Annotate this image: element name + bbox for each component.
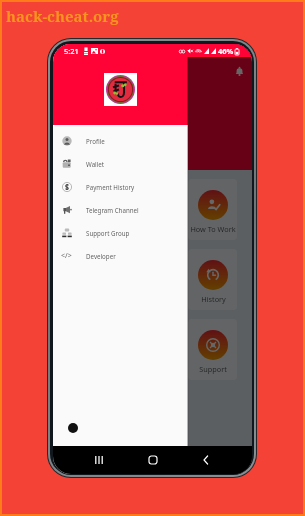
staticText: 46%: [218, 46, 234, 56]
button[interactable]: Withdraw: [128, 179, 177, 240]
staticText: Add Money: [73, 224, 112, 234]
staticText: hack-cheat.org: [6, 6, 119, 26]
staticText: Telegram Channel: [86, 206, 139, 214]
button[interactable]: </>: [53, 244, 188, 267]
button[interactable]: Support Group: [53, 221, 188, 244]
staticText: Wallet: [86, 160, 105, 168]
button[interactable]: How To Work: [188, 179, 237, 240]
staticText: History: [201, 294, 226, 304]
button[interactable]: Add Money: [68, 179, 117, 240]
button[interactable]: Back: [198, 452, 214, 468]
button[interactable]: Recents: [91, 452, 107, 468]
button[interactable]: History: [188, 249, 237, 310]
staticText: Payment History: [86, 183, 135, 191]
staticText: How To Work: [190, 224, 236, 234]
button[interactable]: Profile: [53, 129, 188, 152]
staticText: Support Group: [86, 229, 130, 237]
button[interactable]: Notifications: [234, 66, 245, 77]
staticText: Support: [199, 364, 227, 374]
button[interactable]: Refer & Earn: [68, 249, 117, 310]
staticText: Developer: [86, 252, 116, 260]
button[interactable]: Support: [188, 319, 237, 380]
staticText: Profile: [86, 137, 105, 145]
button[interactable]: Telegram Channel: [53, 198, 188, 221]
button[interactable]: Home: [145, 452, 161, 468]
staticText: 5:21: [64, 46, 79, 56]
button[interactable]: Payment History: [53, 175, 188, 198]
staticText: Available Balance: [124, 74, 182, 84]
button[interactable]: Wallet: [53, 152, 188, 175]
staticText: ৳ 0.00: [134, 88, 171, 107]
staticText: </>: [61, 251, 72, 261]
